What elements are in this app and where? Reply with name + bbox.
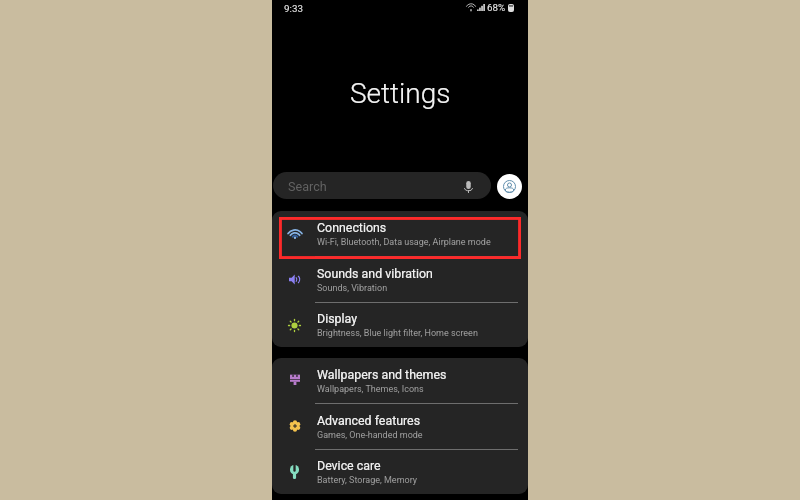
button[interactable]: Advanced features [272,404,528,449]
staticText: Search [288,179,327,194]
staticText: Settings [350,77,451,110]
staticText: 68% [487,2,506,13]
button[interactable]: Connections [272,211,528,256]
staticText: Connections [317,220,387,235]
staticText: Display [317,311,358,326]
staticText: Device care [317,458,381,473]
staticText: Wallpapers and themes [317,367,447,382]
button[interactable]: Device care [272,450,528,494]
button[interactable]: Sounds and vibration [272,257,528,302]
button[interactable]: Account [497,174,522,199]
staticText: Brightness, Blue light filter, Home scre… [317,328,478,339]
button[interactable]: Voice search [460,177,477,194]
staticText: Games, One-handed mode [317,430,423,441]
staticText: Advanced features [317,413,421,428]
button[interactable]: Search [273,172,491,199]
button[interactable]: Display [272,303,528,347]
button[interactable]: Wallpapers and themes [272,358,528,403]
staticText: 9:33 [284,3,303,14]
staticText: Wallpapers, Themes, Icons [317,384,424,395]
staticText: Battery, Storage, Memory [317,475,418,486]
staticText: Sounds and vibration [317,266,433,281]
staticText: Wi-Fi, Bluetooth, Data usage, Airplane m… [317,237,491,248]
staticText: Sounds, Vibration [317,283,388,294]
